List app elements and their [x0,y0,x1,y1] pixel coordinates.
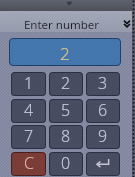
staticText: 1 [24,72,34,94]
staticText: 2 [60,42,70,65]
staticText: 2 [61,72,71,94]
button[interactable]: 1 [11,72,46,96]
button[interactable]: 3 [86,72,120,96]
button[interactable]: 2 [9,38,121,66]
button[interactable]: C [11,152,46,176]
button[interactable]: 5 [49,99,83,123]
staticText: 4 [24,99,34,121]
button[interactable]: 9 [86,125,120,149]
other: Enter [96,157,110,171]
button[interactable]: Enter [86,152,120,176]
staticText: 6 [98,99,108,121]
staticText: 9 [98,125,108,147]
button[interactable]: Expand [120,17,134,31]
button[interactable]: 4 [11,99,46,123]
button[interactable]: 8 [49,125,83,149]
button[interactable]: 0 [49,152,83,176]
staticText: 7 [24,125,34,147]
staticText: 5 [61,99,71,121]
button[interactable]: 7 [11,125,46,149]
button[interactable]: 6 [86,99,120,123]
staticText: 3 [98,72,108,94]
staticText: 8 [61,125,71,147]
staticText: C [24,152,34,174]
button[interactable]: 2 [49,72,83,96]
staticText: 0 [61,152,71,174]
staticText: Enter number [0,17,123,33]
